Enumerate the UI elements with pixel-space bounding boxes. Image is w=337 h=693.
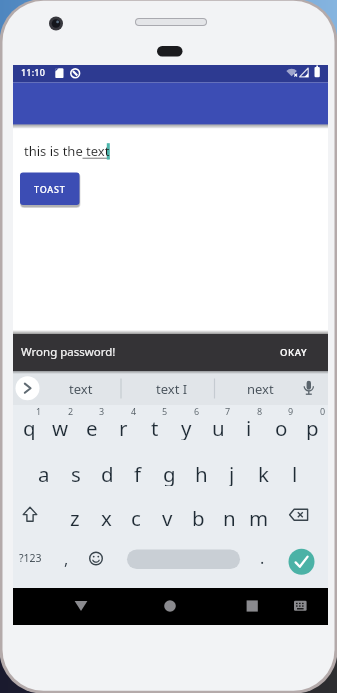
staticText: text (69, 380, 93, 398)
staticText: c (131, 504, 141, 530)
staticText: i (246, 414, 252, 440)
staticText: 5 (162, 405, 168, 417)
staticText: g (163, 460, 176, 486)
staticText: Wrong password! (21, 344, 116, 360)
staticText: h (195, 460, 208, 486)
staticText: d (101, 460, 114, 486)
staticText: 11:10 (21, 66, 46, 78)
staticText: text I (156, 380, 188, 398)
staticText: b (192, 504, 205, 530)
staticText: s (71, 460, 81, 486)
staticText: z (70, 504, 80, 530)
staticText: OKAY (280, 346, 308, 359)
staticText: w (52, 414, 69, 440)
staticText: TOAST (34, 183, 66, 195)
staticText: u (212, 414, 225, 440)
staticText: j (229, 460, 235, 486)
staticText: 1 (36, 405, 42, 417)
staticText: x (101, 504, 112, 530)
staticText: y (181, 414, 192, 440)
staticText: , (64, 548, 69, 570)
staticText: 4 (131, 405, 137, 417)
staticText: e (86, 414, 98, 440)
staticText: ?123 (19, 551, 42, 565)
staticText: a (38, 460, 50, 486)
staticText: m (249, 504, 269, 530)
staticText: this is the text (24, 142, 110, 160)
staticText: 8 (257, 405, 263, 417)
staticText: t (151, 414, 159, 440)
staticText: 6 (194, 405, 200, 417)
staticText: 0 (320, 405, 326, 417)
staticText: q (23, 414, 36, 440)
staticText: f (134, 460, 142, 486)
staticText: 7 (225, 405, 231, 417)
staticText: l (292, 460, 298, 486)
staticText: k (258, 460, 269, 486)
staticText: p (306, 414, 319, 440)
staticText: o (275, 414, 288, 440)
staticText: n (223, 504, 236, 530)
staticText: 3 (99, 405, 105, 417)
staticText: v (162, 504, 173, 530)
staticText: next (247, 380, 274, 398)
staticText: . (260, 547, 265, 569)
staticText: 2 (68, 405, 74, 417)
staticText: 9 (288, 405, 294, 417)
staticText: r (119, 414, 128, 440)
